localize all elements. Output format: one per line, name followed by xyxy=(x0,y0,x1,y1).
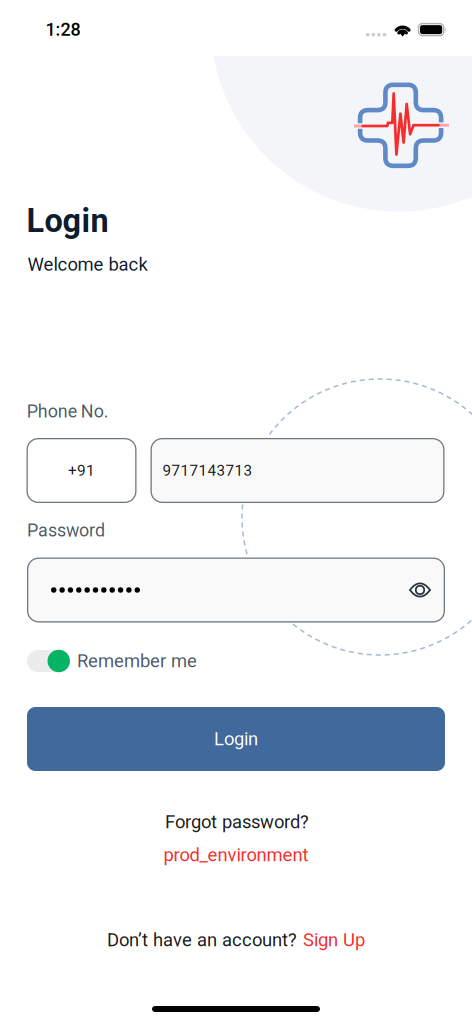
staticText: +91 xyxy=(68,461,95,479)
button[interactable]: +91 xyxy=(26,438,136,503)
button[interactable]: Forgot password? xyxy=(165,809,309,835)
staticText: Remember me xyxy=(77,650,197,672)
staticText: Password xyxy=(27,520,105,541)
button[interactable]: Sign Up xyxy=(297,929,365,951)
button[interactable]: Remember me xyxy=(27,647,197,675)
staticText: Forgot password? xyxy=(165,811,309,833)
staticText: Sign Up xyxy=(303,929,365,951)
staticText: Don’t have an account? xyxy=(107,929,297,951)
button[interactable] xyxy=(27,557,445,622)
staticText: prod_environment xyxy=(163,844,308,866)
staticText: Login xyxy=(26,202,108,240)
staticText: Phone No. xyxy=(27,401,109,422)
staticText: 9717143713 xyxy=(162,462,252,479)
button[interactable]: Show password xyxy=(402,572,438,608)
staticText: Welcome back xyxy=(27,254,147,275)
button[interactable]: Login xyxy=(27,707,445,771)
staticText: Login xyxy=(214,728,258,750)
button[interactable]: 9717143713 xyxy=(150,438,444,503)
staticText: 1:28 xyxy=(45,19,80,40)
